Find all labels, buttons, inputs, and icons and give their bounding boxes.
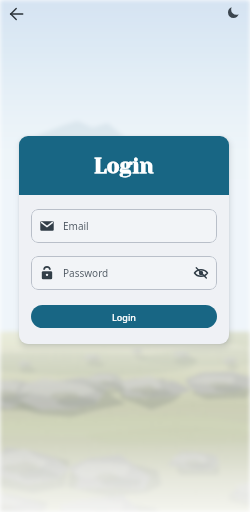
- button[interactable]: Email: [31, 209, 217, 243]
- button[interactable]: Back: [2, 0, 30, 28]
- button[interactable]: Login: [31, 305, 217, 328]
- staticText: Email: [63, 219, 89, 233]
- staticText: Password: [63, 266, 109, 280]
- button[interactable]: Password: [31, 256, 217, 290]
- staticText: Login: [94, 154, 154, 178]
- staticText: Login: [112, 311, 136, 323]
- button[interactable]: Dark mode: [219, 0, 247, 25]
